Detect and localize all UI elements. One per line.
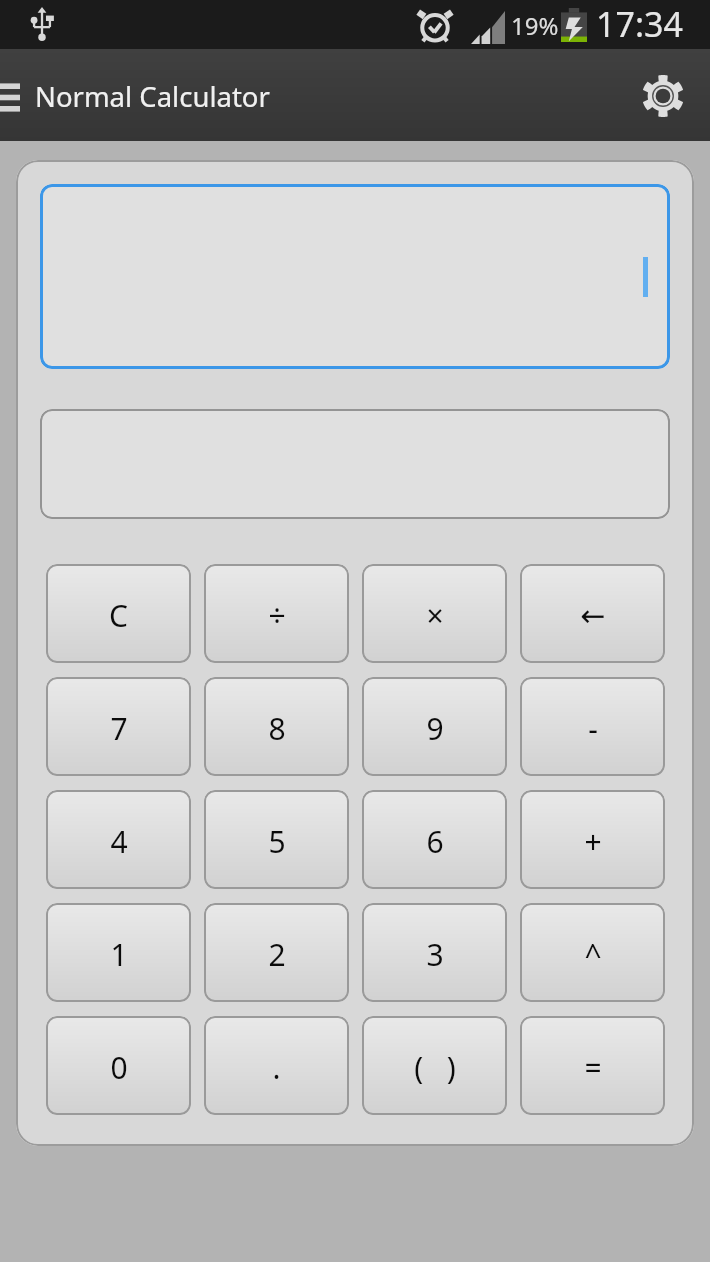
button[interactable]: - bbox=[520, 677, 665, 776]
button[interactable]: ( ) bbox=[362, 1016, 507, 1115]
button[interactable]: × bbox=[362, 564, 507, 663]
button[interactable]: Settings bbox=[616, 49, 710, 141]
button[interactable]: 5 bbox=[204, 790, 349, 889]
staticText: ( ) bbox=[414, 1047, 456, 1088]
button[interactable]: 7 bbox=[46, 677, 191, 776]
button[interactable]: + bbox=[520, 790, 665, 889]
staticText: - bbox=[588, 708, 598, 749]
staticText: Normal Calculator bbox=[35, 78, 270, 115]
button[interactable]: 6 bbox=[362, 790, 507, 889]
button[interactable]: Result bbox=[40, 409, 670, 519]
button[interactable]: ÷ bbox=[204, 564, 349, 663]
staticText: C bbox=[109, 595, 128, 636]
staticText: 2 bbox=[268, 934, 286, 975]
button[interactable]: Expression input bbox=[40, 184, 670, 369]
staticText: 8 bbox=[268, 708, 286, 749]
staticText: × bbox=[426, 595, 444, 636]
button[interactable]: = bbox=[520, 1016, 665, 1115]
staticText: 3 bbox=[426, 934, 444, 975]
button[interactable]: 1 bbox=[46, 903, 191, 1002]
staticText: 7 bbox=[110, 708, 128, 749]
staticText: ^ bbox=[584, 934, 602, 975]
button[interactable]: C bbox=[46, 564, 191, 663]
button[interactable]: 4 bbox=[46, 790, 191, 889]
staticText: + bbox=[584, 821, 602, 862]
staticText: 17:34 bbox=[596, 1, 683, 47]
staticText: 0 bbox=[110, 1047, 128, 1088]
staticText: 6 bbox=[426, 821, 444, 862]
staticText: 4 bbox=[110, 821, 128, 862]
button[interactable]: 9 bbox=[362, 677, 507, 776]
staticText: ÷ bbox=[268, 595, 286, 636]
staticText: 5 bbox=[268, 821, 286, 862]
button[interactable]: 8 bbox=[204, 677, 349, 776]
staticText: = bbox=[584, 1047, 602, 1088]
button[interactable]: . bbox=[204, 1016, 349, 1115]
button[interactable]: Open navigation menu bbox=[0, 49, 34, 141]
staticText: 19% bbox=[511, 9, 559, 42]
button[interactable]: 3 bbox=[362, 903, 507, 1002]
staticText: . bbox=[272, 1047, 281, 1088]
button[interactable]: 0 bbox=[46, 1016, 191, 1115]
staticText: 1 bbox=[110, 934, 128, 975]
button[interactable]: ← bbox=[520, 564, 665, 663]
button[interactable]: 2 bbox=[204, 903, 349, 1002]
staticText: 9 bbox=[426, 708, 444, 749]
button[interactable]: ^ bbox=[520, 903, 665, 1002]
staticText: ← bbox=[580, 598, 606, 633]
